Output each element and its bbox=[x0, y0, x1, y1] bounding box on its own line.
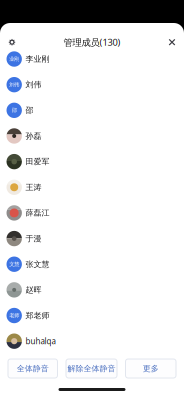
staticText: 张文慧 bbox=[25, 259, 49, 269]
staticText: 田爱军 bbox=[25, 157, 49, 166]
staticText: buhalqa bbox=[25, 336, 55, 346]
button[interactable]: 业刚 bbox=[0, 46, 184, 72]
staticText: 于漫 bbox=[25, 234, 41, 243]
staticText: 邵 bbox=[12, 107, 17, 114]
staticText: 老师 bbox=[9, 312, 19, 319]
button[interactable]: buhalqa bbox=[0, 328, 184, 354]
staticText: 邵 bbox=[25, 105, 33, 115]
staticText: 更多 bbox=[143, 364, 159, 373]
button[interactable]: 赵晖 bbox=[0, 277, 184, 303]
staticText: 管理成员(130) bbox=[63, 36, 120, 48]
button[interactable]: 全体静音 bbox=[8, 359, 57, 378]
staticText: 赵晖 bbox=[25, 285, 41, 295]
button[interactable]: 邵 bbox=[0, 97, 184, 123]
button[interactable]: 薛磊江 bbox=[0, 200, 184, 226]
button[interactable]: 老师 bbox=[0, 303, 184, 328]
button[interactable]: 解除全体静音 bbox=[66, 359, 117, 378]
staticText: 文慧 bbox=[9, 261, 19, 267]
button[interactable]: 王涛 bbox=[0, 174, 184, 200]
button[interactable]: 刘伟 bbox=[0, 72, 184, 97]
button[interactable]: 于漫 bbox=[0, 226, 184, 251]
staticText: 解除全体静音 bbox=[67, 364, 115, 373]
button[interactable]: 更多 bbox=[125, 359, 176, 378]
staticText: 刘伟 bbox=[25, 80, 41, 90]
staticText: 郑老师 bbox=[25, 311, 49, 320]
button[interactable]: 孙磊 bbox=[0, 123, 184, 149]
button[interactable]: 田爱军 bbox=[0, 149, 184, 174]
staticText: 薛磊江 bbox=[25, 208, 49, 218]
button[interactable]: 文慧 bbox=[0, 251, 184, 277]
staticText: 李业刚 bbox=[25, 54, 49, 64]
staticText: 业刚 bbox=[9, 56, 19, 62]
staticText: 孙磊 bbox=[25, 131, 41, 141]
button[interactable]: 群设置 bbox=[0, 33, 24, 51]
staticText: 王涛 bbox=[25, 182, 41, 192]
staticText: 全体静音 bbox=[17, 364, 49, 373]
staticText: 刘伟 bbox=[9, 81, 19, 88]
button[interactable]: 关闭 bbox=[160, 33, 184, 51]
